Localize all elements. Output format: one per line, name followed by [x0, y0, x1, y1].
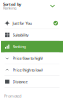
staticText: Promoted	[4, 93, 21, 99]
button[interactable]: Ranking	[1, 41, 63, 53]
button[interactable]: Price (high to low)	[1, 64, 63, 76]
button[interactable]: Suitability	[1, 29, 63, 41]
staticText: Ranking	[12, 44, 25, 49]
staticText: Suitability	[12, 32, 28, 37]
staticText: Just for You	[12, 20, 31, 26]
button[interactable]: Distance	[1, 76, 63, 88]
staticText: Sorted by	[3, 1, 21, 7]
button[interactable]: Just for You	[1, 17, 63, 29]
staticText: Distance	[12, 79, 27, 84]
button[interactable]: Price (low to high)	[1, 53, 63, 64]
staticText: Price (low to high)	[12, 56, 42, 61]
button[interactable]: Sorted by	[1, 0, 63, 17]
staticText: Price (high to low)	[12, 67, 42, 73]
staticText: Ranking	[3, 5, 16, 10]
